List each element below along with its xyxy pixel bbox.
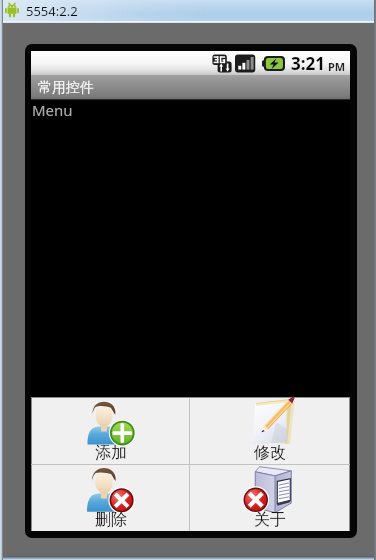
staticText: 3:21 xyxy=(291,52,325,75)
staticText: 添加 xyxy=(95,443,127,463)
staticText: 删除 xyxy=(95,510,127,530)
button[interactable]: Edit contact xyxy=(190,398,349,464)
staticText: 关于 xyxy=(254,510,286,530)
staticText: 常用控件 xyxy=(38,79,94,97)
staticText: 修改 xyxy=(254,443,286,463)
button[interactable]: Delete contact xyxy=(32,465,189,531)
staticText: 5554:2.2 xyxy=(26,2,78,20)
button[interactable]: Add contact xyxy=(32,398,189,464)
staticText: Menu xyxy=(32,100,73,120)
staticText: PM xyxy=(328,59,346,74)
button[interactable]: About xyxy=(190,465,349,531)
